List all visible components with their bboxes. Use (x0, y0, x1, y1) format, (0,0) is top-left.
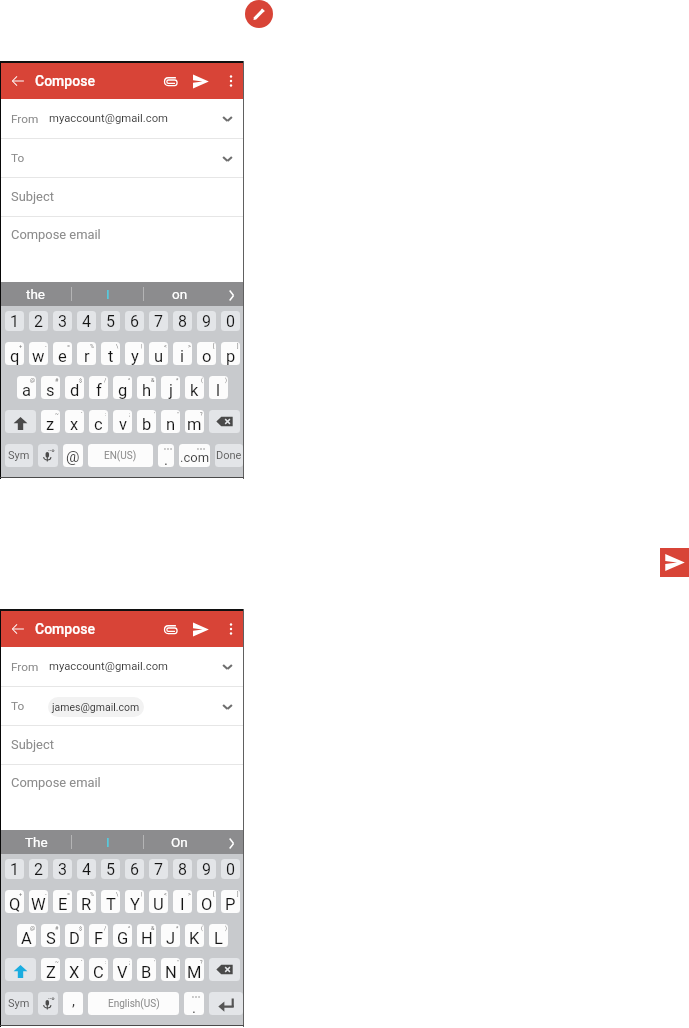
button[interactable]: S (41, 924, 60, 947)
button[interactable]: h (137, 376, 156, 399)
button[interactable]: Send (660, 548, 689, 577)
button[interactable]: d (65, 376, 84, 399)
button[interactable]: 5 (101, 859, 120, 879)
button[interactable]: v (113, 410, 132, 433)
button[interactable]: m (185, 410, 204, 433)
button[interactable]: Subject (1, 726, 244, 764)
button[interactable]: Compose (245, 0, 273, 28)
button[interactable]: o (197, 342, 216, 365)
button[interactable]: I (173, 890, 192, 913)
button[interactable]: 3 (53, 859, 72, 879)
button[interactable]: Sym (5, 444, 33, 467)
button[interactable]: z (41, 410, 60, 433)
button[interactable]: . (158, 444, 174, 467)
button[interactable]: 0 (221, 311, 240, 331)
button[interactable]: Compose email (1, 217, 244, 282)
button[interactable]: E (53, 890, 72, 913)
button[interactable]: a (17, 376, 36, 399)
button[interactable]: t (101, 342, 120, 365)
button[interactable]: Backspace (209, 410, 240, 433)
button[interactable]: The (1, 830, 71, 854)
button[interactable]: From (1, 99, 244, 138)
button[interactable]: N (161, 958, 180, 981)
button[interactable]: Navigate up (7, 618, 29, 640)
button[interactable]: p (221, 342, 240, 365)
button[interactable]: x (65, 410, 84, 433)
button[interactable]: To (1, 139, 244, 177)
button[interactable]: Attach file (159, 70, 181, 92)
button[interactable]: I (72, 282, 143, 306)
button[interactable]: f (89, 376, 108, 399)
button[interactable]: C (89, 958, 108, 981)
button[interactable]: L (209, 924, 228, 947)
button[interactable]: @ (63, 444, 83, 467)
button[interactable]: w (29, 342, 48, 365)
button[interactable]: q (5, 342, 24, 365)
button[interactable]: U (149, 890, 168, 913)
button[interactable]: k (185, 376, 204, 399)
button[interactable]: 6 (125, 311, 144, 331)
button[interactable]: From (1, 647, 244, 686)
button[interactable]: 4 (77, 311, 96, 331)
button[interactable]: .com (179, 444, 210, 467)
button[interactable]: Voice input (38, 992, 58, 1015)
button[interactable]: r (77, 342, 96, 365)
button[interactable]: 5 (101, 311, 120, 331)
button[interactable]: H (137, 924, 156, 947)
button[interactable]: K (185, 924, 204, 947)
button[interactable]: On (144, 830, 215, 854)
button[interactable]: on (144, 282, 215, 306)
button[interactable]: Q (5, 890, 24, 913)
button[interactable]: , (63, 992, 83, 1015)
button[interactable]: 2 (29, 859, 48, 879)
button[interactable]: 0 (221, 859, 240, 879)
button[interactable]: Attach file (159, 618, 181, 640)
button[interactable]: Navigate up (7, 70, 29, 92)
button[interactable]: 1 (5, 859, 24, 879)
button[interactable]: Done (215, 444, 243, 467)
button[interactable]: More suggestions (215, 282, 244, 306)
button[interactable]: F (89, 924, 108, 947)
button[interactable]: y (125, 342, 144, 365)
button[interactable]: Backspace (209, 958, 240, 981)
button[interactable]: More options (220, 70, 242, 92)
button[interactable]: 3 (53, 311, 72, 331)
button[interactable]: james@gmail.com (48, 697, 144, 717)
button[interactable]: e (53, 342, 72, 365)
button[interactable]: T (101, 890, 120, 913)
button[interactable]: s (41, 376, 60, 399)
button[interactable]: M (185, 958, 204, 981)
button[interactable]: 7 (149, 311, 168, 331)
button[interactable]: 1 (5, 311, 24, 331)
button[interactable]: A (17, 924, 36, 947)
button[interactable]: l (209, 376, 228, 399)
button[interactable]: j (161, 376, 180, 399)
button[interactable]: More suggestions (215, 830, 244, 854)
button[interactable]: D (65, 924, 84, 947)
button[interactable]: Y (125, 890, 144, 913)
button[interactable]: Z (41, 958, 60, 981)
button[interactable]: B (137, 958, 156, 981)
button[interactable]: O (197, 890, 216, 913)
button[interactable]: P (221, 890, 240, 913)
button[interactable]: 8 (173, 311, 192, 331)
button[interactable]: b (137, 410, 156, 433)
button[interactable]: Shift (5, 410, 36, 433)
button[interactable]: Compose email (1, 765, 244, 830)
button[interactable]: More options (220, 618, 242, 640)
button[interactable]: 8 (173, 859, 192, 879)
button[interactable]: Voice input (38, 444, 58, 467)
button[interactable]: Sym (5, 992, 33, 1015)
button[interactable]: n (161, 410, 180, 433)
button[interactable]: X (65, 958, 84, 981)
button[interactable]: c (89, 410, 108, 433)
button[interactable]: 9 (197, 859, 216, 879)
button[interactable]: u (149, 342, 168, 365)
button[interactable]: G (113, 924, 132, 947)
button[interactable]: Shift (5, 958, 36, 981)
button[interactable]: W (29, 890, 48, 913)
button[interactable]: 4 (77, 859, 96, 879)
button[interactable]: I (72, 830, 143, 854)
button[interactable]: Enter (209, 992, 243, 1015)
button[interactable]: g (113, 376, 132, 399)
